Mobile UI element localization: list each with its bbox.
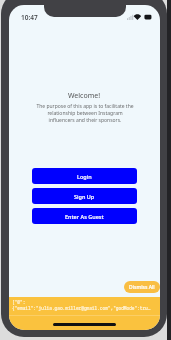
- button[interactable]: Enter As Guest: [32, 208, 137, 224]
- staticText: Dismiss All: [129, 284, 155, 291]
- staticText: The purpose of this app is to facilitate…: [35, 103, 135, 124]
- staticText: {"email":"julia.gao.miller@gmail.com","g…: [12, 305, 151, 311]
- staticText: Welcome!: [68, 91, 101, 101]
- staticText: Enter As Guest: [65, 213, 104, 220]
- button[interactable]: Sign Up: [32, 188, 137, 204]
- staticText: 10:47: [21, 13, 38, 20]
- staticText: Sign Up: [74, 193, 95, 200]
- staticText: Login: [77, 173, 92, 180]
- staticText: ["0":: [12, 299, 26, 305]
- button[interactable]: Dismiss All: [124, 281, 160, 293]
- button[interactable]: Login: [32, 168, 137, 184]
